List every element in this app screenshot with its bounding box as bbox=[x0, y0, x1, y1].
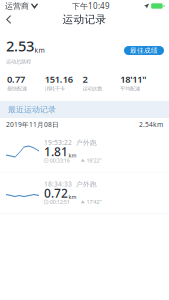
staticText: 0.72 bbox=[44, 185, 68, 201]
staticText: 下午10:49 bbox=[72, 1, 110, 11]
staticText: 00:12:51 bbox=[50, 198, 70, 205]
staticText: 18'22" bbox=[86, 157, 101, 164]
staticText: 2.54km bbox=[139, 120, 163, 129]
staticText: 1.81 bbox=[44, 143, 68, 159]
staticText: 18:34:33 户外跑 bbox=[44, 179, 97, 188]
staticText: 151.16 bbox=[45, 73, 73, 85]
staticText: km bbox=[68, 193, 76, 200]
staticText: 运动次数 bbox=[82, 85, 102, 92]
staticText: 17'42" bbox=[86, 198, 101, 205]
button[interactable]: 19:53:22 户外跑 bbox=[0, 131, 169, 172]
staticText: 00:33:16 bbox=[50, 157, 70, 164]
staticText: 最快配速 bbox=[7, 85, 27, 92]
staticText: 运营商 bbox=[5, 1, 29, 11]
staticText: 运动记录 bbox=[62, 13, 106, 26]
staticText: 平均配速 bbox=[120, 85, 140, 92]
staticText: 最近运动记录 bbox=[8, 105, 56, 114]
staticText: 消耗千卡 bbox=[45, 85, 65, 92]
button[interactable]: 18:34:33 户外跑 bbox=[0, 172, 169, 213]
staticText: km bbox=[34, 46, 44, 54]
button[interactable]: Back bbox=[0, 12, 19, 27]
staticText: 最佳成绩 bbox=[130, 46, 158, 55]
staticText: 运动总路程 bbox=[6, 58, 31, 65]
staticText: 2.53 bbox=[6, 36, 34, 55]
staticText: 2 bbox=[82, 73, 87, 85]
staticText: 0.77 bbox=[7, 73, 25, 85]
staticText: 18'11" bbox=[120, 73, 146, 85]
staticText: km bbox=[68, 152, 76, 159]
staticText: 19:53:22 户外跑 bbox=[44, 138, 97, 147]
staticText: 2019年11月08日 bbox=[6, 120, 59, 129]
button[interactable]: 最佳成绩 bbox=[124, 46, 164, 55]
